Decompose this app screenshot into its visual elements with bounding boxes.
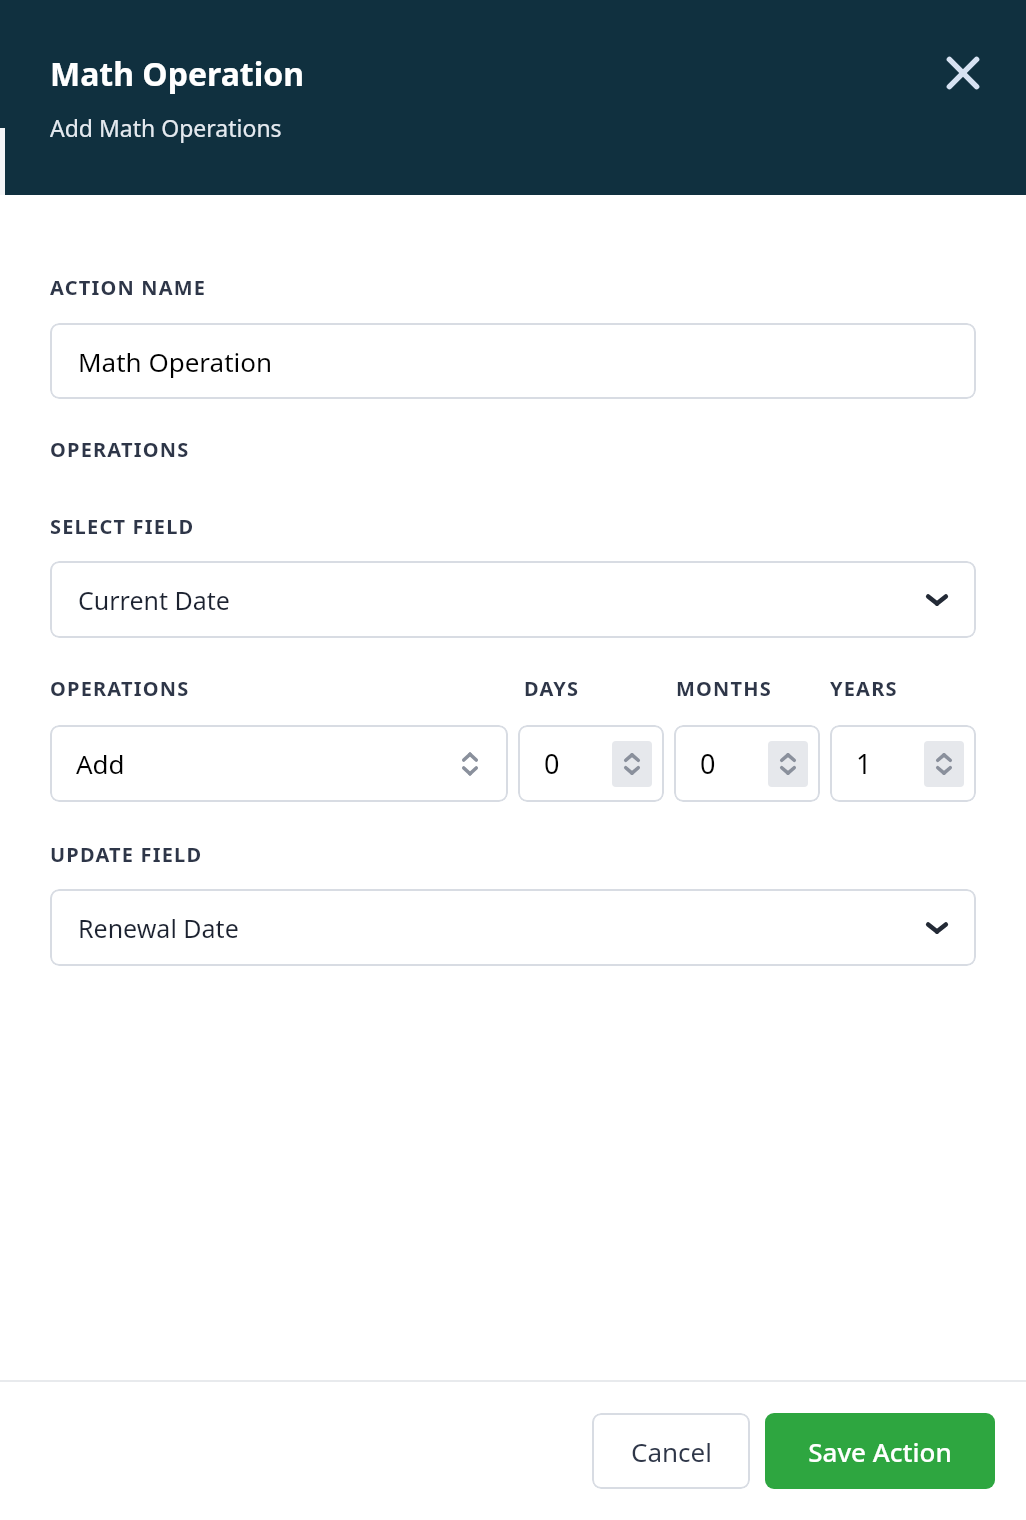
staticText: Add Math Operations [50, 112, 282, 143]
button[interactable]: Cancel [592, 1413, 750, 1489]
button[interactable]: 0 [674, 725, 820, 802]
staticText: Cancel [631, 1434, 712, 1469]
staticText: 1 [856, 745, 872, 782]
button[interactable]: 0 [518, 725, 664, 802]
staticText: MONTHS [676, 675, 830, 702]
staticText: Add [76, 746, 125, 781]
button[interactable]: Save Action [765, 1413, 995, 1489]
staticText: SELECT FIELD [50, 513, 195, 540]
staticText: Renewal Date [78, 911, 239, 945]
button[interactable]: Math Operation [50, 323, 976, 399]
staticText: Current Date [78, 583, 230, 617]
staticText: 0 [700, 745, 716, 782]
button[interactable]: Close [930, 40, 996, 106]
button[interactable]: 1 [830, 725, 976, 802]
staticText: OPERATIONS [50, 436, 190, 463]
staticText: Math Operation [78, 344, 273, 379]
button[interactable]: Stepper [924, 741, 964, 787]
staticText: Save Action [808, 1434, 952, 1469]
staticText: 0 [544, 745, 560, 782]
button[interactable]: Renewal Date [50, 889, 976, 966]
button[interactable]: Add [50, 725, 508, 802]
button[interactable]: Stepper [768, 741, 808, 787]
staticText: OPERATIONS [50, 675, 202, 702]
button[interactable]: Current Date [50, 561, 976, 638]
staticText: DAYS [524, 675, 676, 702]
staticText: Math Operation [50, 52, 305, 96]
staticText: UPDATE FIELD [50, 841, 203, 868]
button[interactable]: Stepper [612, 741, 652, 787]
staticText: ACTION NAME [50, 274, 207, 301]
staticText: YEARS [830, 675, 976, 702]
